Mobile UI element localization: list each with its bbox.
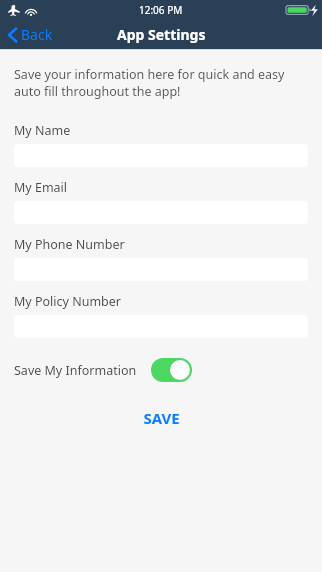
button[interactable]: Save My Information toggle	[151, 358, 192, 382]
staticText: Save My Information	[14, 362, 137, 379]
staticText: My Email	[14, 179, 68, 196]
staticText: Back	[21, 25, 53, 44]
staticText: Save your information here for quick and…	[14, 66, 308, 100]
staticText: 12:06 PM	[139, 3, 183, 17]
button[interactable]: Back	[0, 21, 63, 48]
staticText: My Name	[14, 122, 71, 139]
button[interactable]: SAVE	[127, 404, 196, 432]
staticText: My Phone Number	[14, 236, 125, 253]
staticText: My Policy Number	[14, 293, 121, 310]
staticText: SAVE	[143, 408, 180, 428]
staticText: App Settings	[117, 25, 206, 44]
